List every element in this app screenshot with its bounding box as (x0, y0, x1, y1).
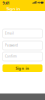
staticText: Email (5, 31, 14, 35)
button[interactable]: Sign in (2, 64, 42, 72)
button[interactable]: Email (2, 29, 42, 38)
staticText: 9:41 (3, 1, 10, 6)
staticText: Password (5, 43, 18, 47)
staticText: Confirm (5, 54, 17, 58)
staticText: Sign in (15, 65, 29, 71)
button[interactable]: Password (2, 41, 42, 50)
staticText: Sign in (6, 6, 20, 11)
button[interactable]: Confirm (2, 52, 42, 61)
